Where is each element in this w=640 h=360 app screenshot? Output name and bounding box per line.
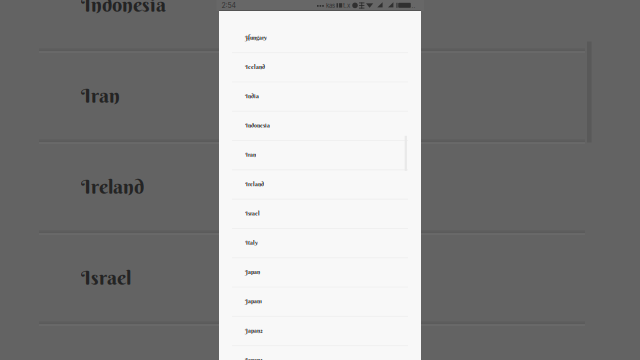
button[interactable]: Italy xyxy=(0,0,202,29)
staticText: India xyxy=(245,92,259,100)
staticText: t.x xyxy=(343,2,350,9)
staticText: Israel xyxy=(245,210,260,217)
staticText: Japan xyxy=(245,268,260,275)
staticText: Ireland xyxy=(81,174,144,199)
staticText: Indonesia xyxy=(81,0,166,17)
button[interactable]: Indonesia xyxy=(0,0,202,29)
staticText: Japan1 xyxy=(245,298,262,305)
staticText: Ireland xyxy=(245,180,264,188)
button[interactable]: Israel xyxy=(0,0,202,29)
staticText: Italy xyxy=(245,239,258,246)
staticText: Japan2 xyxy=(245,327,263,334)
staticText: kas xyxy=(326,2,335,9)
button[interactable]: Japan3 xyxy=(0,0,202,29)
staticText: Japan3 xyxy=(245,356,263,360)
staticText: Iceland xyxy=(245,63,265,70)
staticText: Hungary xyxy=(245,34,267,41)
staticText: Israel xyxy=(81,265,131,290)
staticText: 2:54 xyxy=(221,1,235,10)
staticText: Iran xyxy=(245,151,256,158)
button[interactable]: Japan2 xyxy=(0,0,202,29)
button[interactable]: Japan1 xyxy=(0,0,202,29)
button[interactable]: India xyxy=(0,0,202,29)
button[interactable]: Hungary xyxy=(0,0,202,29)
staticText: Indonesia xyxy=(245,122,270,129)
staticText: Iran xyxy=(81,83,120,108)
button[interactable]: Iran xyxy=(0,0,202,29)
button[interactable]: Japan xyxy=(0,0,202,29)
button[interactable]: Ireland xyxy=(0,0,202,29)
button[interactable]: Iceland xyxy=(0,0,202,29)
staticText: .. xyxy=(412,2,416,9)
